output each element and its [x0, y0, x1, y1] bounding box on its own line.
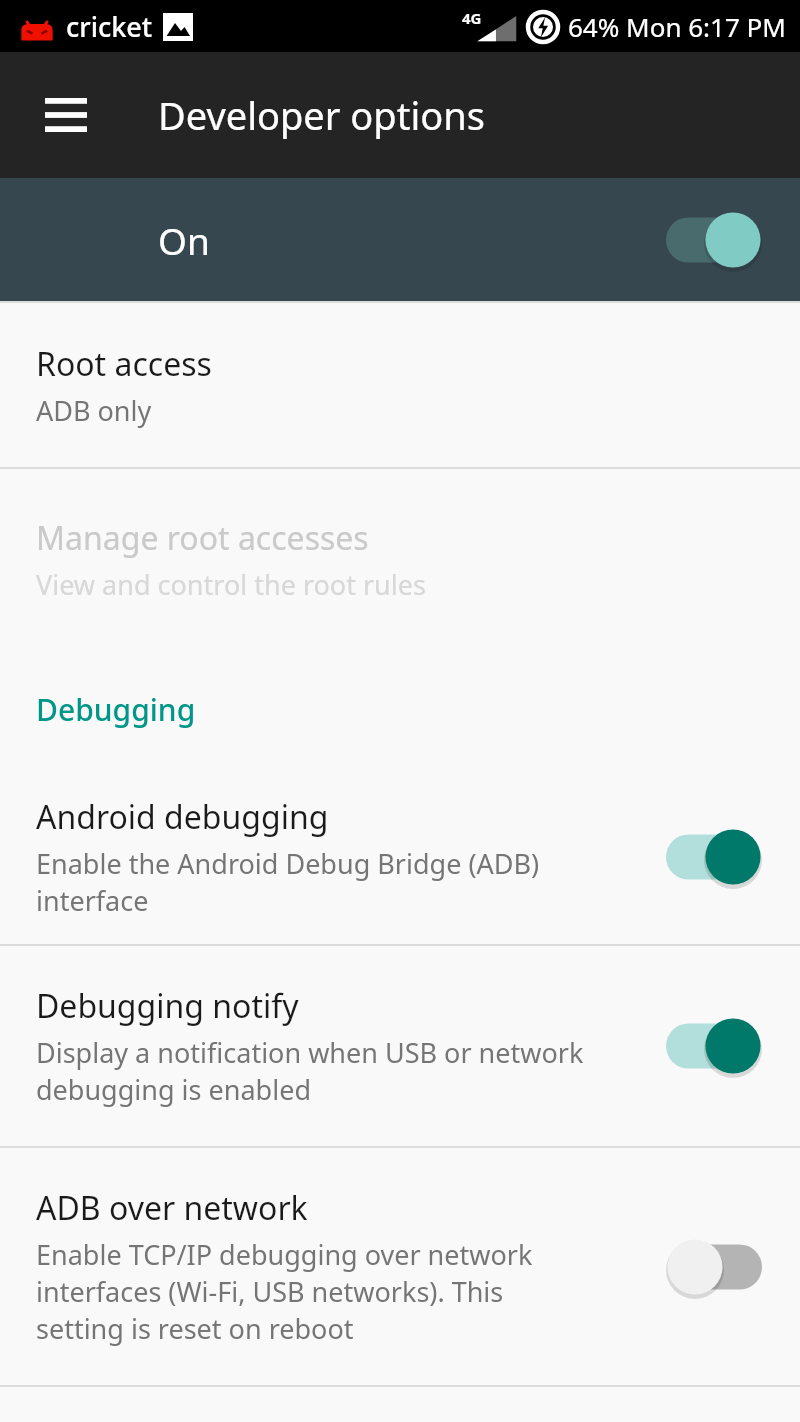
staticText: Enable the Android Debug Bridge (ADB) in… — [36, 845, 540, 919]
staticText: Android debugging — [36, 795, 329, 839]
button[interactable]: Manage root accesses — [0, 469, 800, 649]
staticText: On — [158, 215, 210, 265]
staticText: Enable TCP/IP debugging over network int… — [36, 1236, 533, 1347]
button[interactable]: Android debugging — [0, 769, 800, 944]
staticText: 4G — [462, 8, 482, 28]
button[interactable]: Open navigation menu — [22, 71, 110, 159]
button[interactable]: Toggle Android debugging — [666, 828, 762, 886]
button[interactable]: On — [0, 178, 800, 301]
staticText: ADB over network — [36, 1186, 308, 1230]
staticText: 64% Mon 6:17 PM — [568, 9, 786, 44]
staticText: Debugging notify — [36, 984, 299, 1028]
staticText: Manage root accesses — [36, 516, 369, 560]
staticText: View and control the root rules — [36, 566, 426, 603]
staticText: ADB only — [36, 392, 152, 429]
button[interactable]: ADB over network — [0, 1148, 800, 1385]
button[interactable]: Debugging notify — [0, 946, 800, 1146]
button[interactable]: Root access — [0, 303, 800, 467]
button[interactable]: Toggle Debugging notify — [666, 1017, 762, 1075]
button[interactable]: Toggle ADB over network — [666, 1238, 762, 1296]
staticText: Root access — [36, 342, 212, 386]
staticText: Developer options — [158, 89, 485, 141]
staticText: Debugging — [36, 689, 196, 730]
staticText: Display a notification when USB or netwo… — [36, 1034, 584, 1108]
staticText: cricket — [66, 8, 153, 45]
